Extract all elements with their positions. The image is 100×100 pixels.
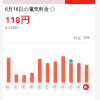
button[interactable]: 金 [37, 84, 43, 90]
staticText: 月 [6, 85, 10, 89]
button[interactable]: 水 [76, 84, 82, 90]
staticText: kWh [83, 35, 91, 40]
staticText: 火 [14, 85, 18, 89]
button[interactable]: 月 [60, 84, 66, 90]
staticText: 日 [53, 85, 57, 89]
staticText: 4.2kWh [5, 25, 19, 30]
button[interactable]: 詳細 [50, 7, 55, 12]
staticText: 木 [84, 85, 88, 89]
staticText: 6月16日の電気料金 [5, 6, 49, 13]
staticText: 118円 [5, 13, 30, 25]
staticText: 月 [61, 85, 65, 89]
button[interactable]: 水 [21, 84, 27, 90]
button[interactable]: 木 [83, 84, 89, 90]
button[interactable]: 火 [13, 84, 19, 90]
staticText: 木 [30, 85, 34, 89]
button[interactable]: 火 [68, 84, 74, 90]
staticText: 火 [69, 85, 73, 89]
staticText: 金 [38, 85, 42, 89]
staticText: 土 [45, 85, 49, 89]
button[interactable]: 日 [52, 84, 58, 90]
button[interactable]: 木 [29, 84, 35, 90]
staticText: 料金 [74, 36, 81, 40]
button[interactable]: 月 [5, 84, 11, 90]
staticText: 水 [77, 85, 81, 89]
button[interactable]: 土 [44, 84, 50, 90]
staticText: 水 [22, 85, 26, 89]
